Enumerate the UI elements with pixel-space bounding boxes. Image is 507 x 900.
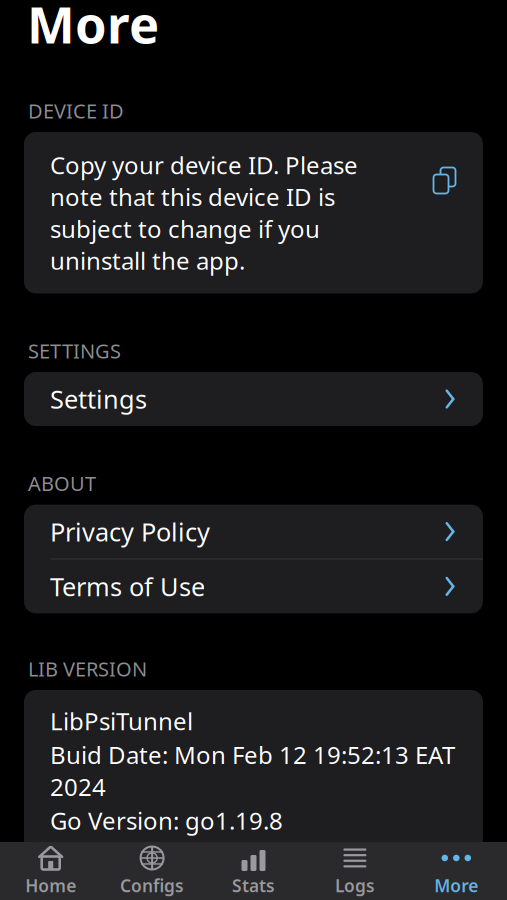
staticText: More: [27, 0, 159, 57]
staticText: Home: [25, 874, 76, 897]
staticText: Buid Date: Mon Feb 12 19:52:13 EAT 2024: [50, 739, 455, 802]
staticText: APP VERSION: [28, 891, 154, 900]
button[interactable]: Logs: [304, 842, 406, 900]
staticText: Logs: [335, 874, 375, 897]
staticText: Terms of Use: [50, 570, 205, 603]
staticText: More: [434, 874, 478, 897]
staticText: Privacy Policy: [50, 515, 210, 548]
staticText: DEVICE ID: [28, 97, 124, 124]
staticText: SETTINGS: [28, 337, 121, 364]
button[interactable]: Copy your device ID. Please note that th…: [24, 132, 483, 293]
staticText: LIB VERSION: [28, 655, 147, 682]
staticText: Settings: [50, 382, 147, 416]
staticText: Configs: [120, 874, 184, 897]
staticText: ABOUT: [28, 470, 96, 497]
button[interactable]: More: [406, 842, 507, 900]
button[interactable]: Settings: [24, 372, 483, 426]
staticText: LibPsiTunnel: [50, 705, 193, 737]
button[interactable]: Terms of Use: [24, 559, 483, 613]
button[interactable]: Privacy Policy: [24, 505, 483, 559]
staticText: Copy your device ID. Please note that th…: [50, 149, 358, 276]
button[interactable]: Configs: [101, 842, 203, 900]
staticText: Stats: [232, 874, 275, 897]
button[interactable]: Home: [0, 842, 101, 900]
button[interactable]: Stats: [203, 842, 304, 900]
staticText: Go Version: go1.19.8: [50, 805, 283, 836]
